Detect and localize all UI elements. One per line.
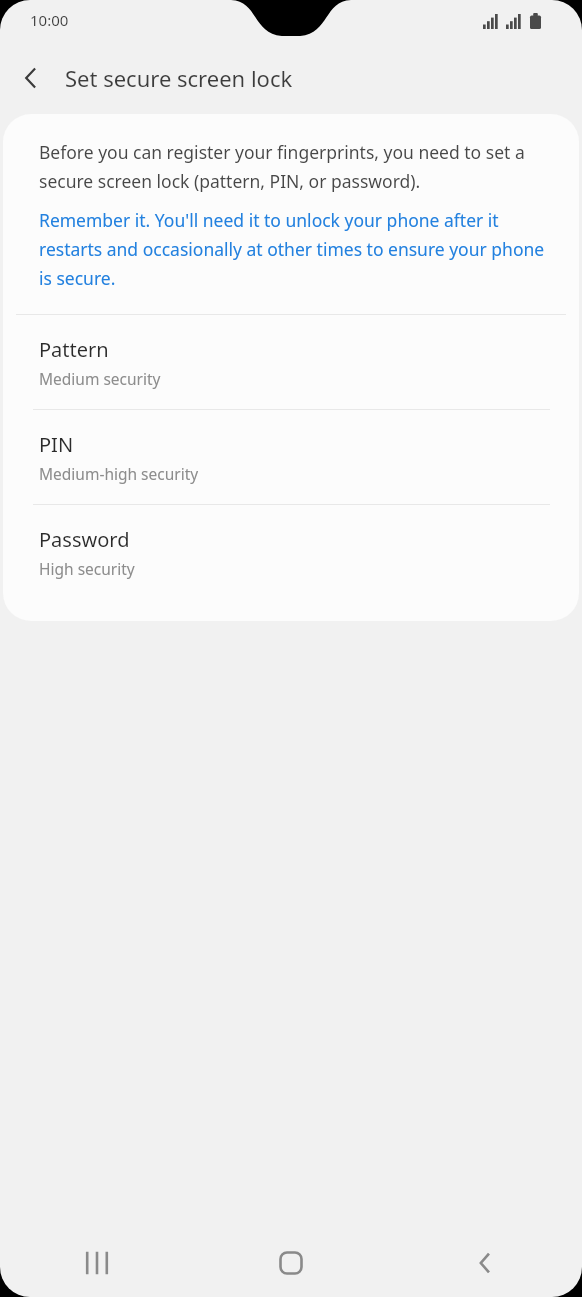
button[interactable]: PIN [3,410,579,504]
staticText: Pattern [39,336,109,363]
staticText: Before you can register your fingerprint… [39,140,549,193]
staticText: 10:00 [30,10,69,30]
staticText: Password [39,526,130,553]
button[interactable]: Password [3,505,579,599]
button[interactable]: Recent apps [0,1229,194,1297]
staticText: PIN [39,431,74,458]
staticText: Medium security [39,368,161,389]
button[interactable]: Back [0,47,62,109]
button[interactable]: Back [388,1229,582,1297]
button[interactable]: Home [194,1229,388,1297]
staticText: Medium-high security [39,463,199,484]
staticText: Set secure screen lock [65,63,293,93]
staticText: High security [39,558,135,579]
button[interactable]: Pattern [3,315,579,409]
staticText: Remember it. You'll need it to unlock yo… [39,208,549,290]
